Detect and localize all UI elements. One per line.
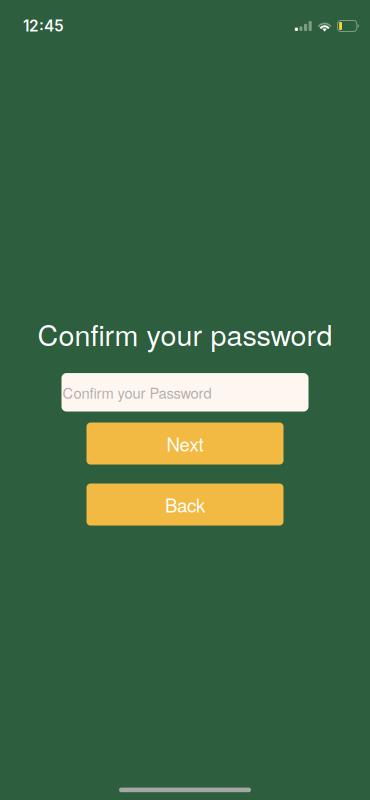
button[interactable]: Confirm your Password — [61, 373, 308, 412]
button[interactable]: Back — [86, 484, 283, 526]
staticText: Confirm your Password — [62, 382, 211, 403]
staticText: Confirm your password — [37, 313, 332, 354]
staticText: 12:45 — [23, 17, 64, 35]
staticText: Next — [166, 430, 203, 457]
button[interactable]: Next — [86, 423, 283, 465]
staticText: Back — [165, 491, 205, 518]
